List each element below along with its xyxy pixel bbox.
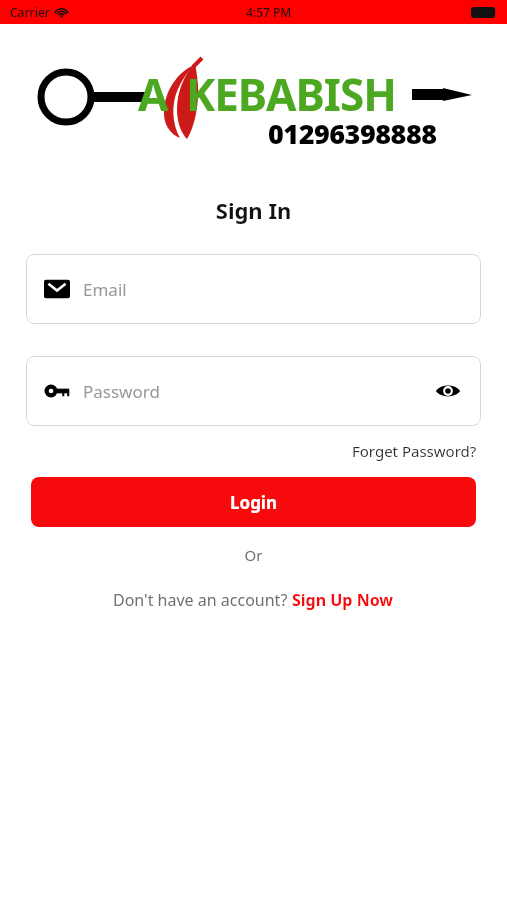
staticText: A bbox=[138, 64, 169, 124]
button[interactable]: Sign Up Now bbox=[292, 589, 394, 611]
staticText: Login bbox=[230, 491, 278, 514]
button[interactable]: Forget Password? bbox=[349, 438, 480, 464]
staticText: Sign In bbox=[0, 195, 507, 225]
button[interactable]: Show password bbox=[433, 376, 463, 406]
staticText: Forget Password? bbox=[352, 441, 477, 461]
staticText: 01296398888 bbox=[268, 115, 437, 152]
staticText: Sign Up Now bbox=[292, 589, 394, 611]
button[interactable]: Password bbox=[26, 356, 481, 426]
staticText: Don't have an account? bbox=[113, 589, 292, 611]
staticText: Password bbox=[83, 380, 160, 403]
button[interactable]: Email bbox=[26, 254, 481, 324]
staticText: KEBABISH bbox=[186, 64, 396, 124]
staticText: Carrier bbox=[10, 4, 50, 20]
staticText: 4:57 PM bbox=[246, 4, 292, 20]
staticText: Email bbox=[83, 278, 127, 301]
button[interactable]: Login bbox=[31, 477, 476, 527]
staticText: Or bbox=[0, 545, 507, 565]
